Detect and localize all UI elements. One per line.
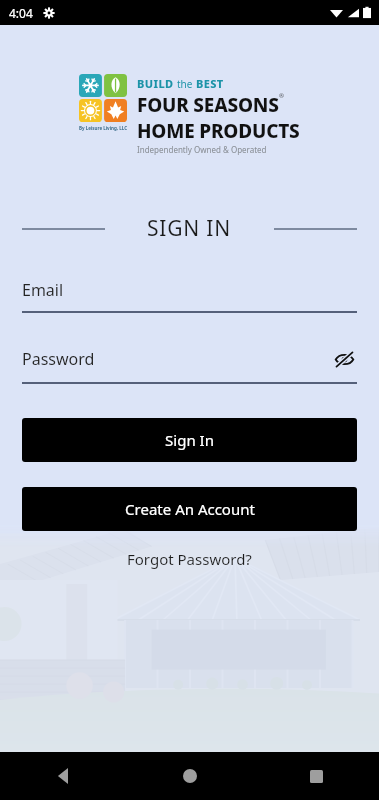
staticText: By Leisure Living, LLC — [79, 125, 128, 131]
staticText: BUILD — [137, 76, 177, 91]
staticText: Sign In — [165, 430, 214, 450]
staticText: 4:04 — [9, 5, 33, 21]
button[interactable]: Sign In — [22, 418, 357, 462]
staticText: SIGN IN — [147, 214, 232, 243]
button[interactable]: Create An Account — [22, 487, 357, 531]
button[interactable]: Recent apps — [253, 752, 379, 800]
staticText: the — [177, 77, 196, 91]
staticText: ® — [279, 92, 284, 100]
button[interactable]: Back — [0, 752, 127, 800]
staticText: BEST — [196, 76, 224, 91]
staticText: Email — [22, 279, 357, 301]
button[interactable]: Home — [127, 752, 253, 800]
button[interactable]: Forgot Password? — [117, 545, 262, 573]
staticText: HOME PRODUCTS — [137, 118, 300, 144]
staticText: Create An Account — [125, 499, 255, 519]
staticText: Forgot Password? — [127, 549, 252, 569]
staticText: Password — [22, 348, 331, 370]
button[interactable]: Password — [22, 346, 357, 384]
staticText: Independently Owned & Operated — [137, 144, 267, 155]
button[interactable]: Email — [22, 279, 357, 313]
staticText: FOUR SEASONS — [137, 92, 279, 118]
button[interactable]: Show password — [331, 346, 357, 372]
